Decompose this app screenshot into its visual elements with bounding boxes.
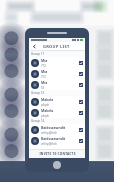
staticText: vrtfxp@thdi [41, 142, 57, 146]
button[interactable]: Select Baidsszawndit [79, 139, 83, 143]
button[interactable]: Select Mia [79, 72, 83, 76]
staticText: Mia [41, 80, 48, 85]
staticText: Group 11 [31, 52, 45, 56]
staticText: 53 [41, 86, 45, 90]
other: Home [53, 161, 61, 169]
button[interactable]: Makela [29, 96, 85, 107]
button[interactable]: Mia [29, 57, 85, 68]
button[interactable]: Mia [29, 79, 85, 90]
staticText: 772 [41, 64, 46, 68]
staticText: INVITE 10 CONTACTS [39, 152, 76, 156]
staticText: Mia [41, 58, 48, 63]
button[interactable]: Makela [29, 107, 85, 118]
button[interactable]: Select Makela [79, 100, 83, 104]
staticText: pilqnh [41, 114, 50, 118]
staticText: Group 14 [31, 119, 45, 123]
button[interactable]: Select Makela [79, 111, 83, 115]
button[interactable]: Select Mia [79, 61, 83, 65]
button[interactable]: Baidsszawndit [29, 124, 85, 135]
button[interactable]: INVITE 10 CONTACTS [29, 149, 85, 158]
staticText: pilqnh [41, 103, 50, 107]
staticText: Makela [41, 108, 54, 113]
button[interactable]: Baidsszawndit [29, 135, 85, 146]
staticText: Baidsszawndit [41, 125, 66, 130]
staticText: Group 12 [31, 91, 45, 95]
button[interactable]: Mia [29, 68, 85, 79]
staticText: Baidsszawndit [41, 136, 66, 141]
staticText: 772 [41, 75, 46, 79]
staticText: vrtfxp@thdi [41, 131, 57, 135]
button[interactable]: Select Baidsszawndit [79, 128, 83, 132]
staticText: GROUP LIST [43, 44, 70, 49]
staticText: Mia [41, 69, 48, 74]
button[interactable]: Select Mia [79, 83, 83, 87]
button[interactable]: Back [31, 43, 37, 49]
staticText: Makela [41, 97, 54, 102]
